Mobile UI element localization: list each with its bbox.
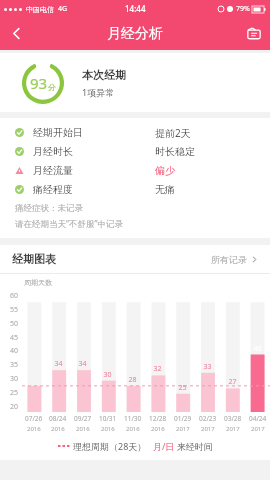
- staticText: 2016: [101, 425, 115, 433]
- staticText: 1项异常: [82, 86, 115, 98]
- staticText: 34: [54, 359, 63, 369]
- staticText: 32: [153, 364, 162, 374]
- staticText: 请在经期当天“不舒服”中记录: [15, 218, 124, 230]
- staticText: 25: [10, 388, 19, 398]
- staticText: 25: [178, 383, 187, 393]
- staticText: 09/27: [74, 414, 92, 423]
- staticText: 来经时间: [177, 441, 213, 452]
- staticText: 分: [48, 82, 56, 92]
- staticText: 30: [103, 370, 112, 380]
- staticText: 2017: [176, 425, 190, 433]
- staticText: 痛经程度: [33, 183, 73, 196]
- staticText: 14:44: [125, 3, 146, 14]
- staticText: 12/28: [149, 414, 167, 423]
- staticText: 月/日: [153, 440, 175, 452]
- staticText: 偏少: [155, 164, 175, 177]
- staticText: 理想周期（28天）: [73, 440, 147, 452]
- staticText: 2017: [201, 425, 215, 433]
- staticText: 93: [30, 73, 48, 93]
- staticText: 60: [10, 291, 19, 301]
- staticText: 2016: [151, 425, 165, 433]
- button[interactable]: 痛经程度: [0, 180, 270, 199]
- staticText: 50: [10, 319, 19, 329]
- staticText: 04/24: [249, 414, 267, 423]
- staticText: 45: [10, 333, 19, 343]
- staticText: 2016: [76, 425, 90, 433]
- staticText: 27: [228, 377, 237, 387]
- staticText: 03/28: [224, 414, 242, 423]
- staticText: 20: [10, 402, 19, 412]
- staticText: 4G: [58, 4, 68, 14]
- staticText: 中国电信: [26, 5, 54, 14]
- staticText: 时长稳定: [155, 145, 195, 158]
- staticText: 55: [10, 305, 19, 315]
- staticText: 月经分析: [107, 25, 163, 43]
- staticText: 07/26: [25, 414, 43, 423]
- staticText: 2016: [51, 425, 65, 433]
- staticText: 2016: [126, 425, 140, 433]
- button[interactable]: 经期开始日: [0, 123, 270, 142]
- staticText: 01/29: [174, 414, 192, 423]
- staticText: 02/23: [199, 414, 217, 423]
- staticText: 40: [10, 346, 19, 356]
- staticText: 40: [253, 344, 262, 354]
- staticText: 经期图表: [12, 252, 56, 266]
- staticText: 提前2天: [155, 126, 191, 140]
- staticText: 经期开始日: [33, 126, 83, 139]
- staticText: 34: [78, 359, 87, 369]
- button[interactable]: 月经时长: [0, 142, 270, 161]
- button[interactable]: 所有记录: [211, 254, 258, 265]
- staticText: 08/24: [49, 414, 67, 423]
- staticText: 痛经症状：未记录: [15, 203, 83, 214]
- staticText: 2017: [251, 425, 265, 433]
- staticText: 2017: [226, 425, 240, 433]
- staticText: 月经时长: [33, 145, 73, 158]
- button[interactable]: 月经流量: [0, 161, 270, 180]
- button[interactable]: Records: [237, 17, 270, 50]
- staticText: 33: [203, 362, 212, 372]
- staticText: 周期天数: [24, 278, 52, 287]
- staticText: 10/31: [99, 414, 117, 423]
- staticText: 11/30: [124, 414, 142, 423]
- staticText: 本次经期: [82, 68, 126, 82]
- staticText: 月经流量: [33, 164, 73, 177]
- staticText: 30: [10, 374, 19, 384]
- staticText: 所有记录: [211, 254, 247, 265]
- staticText: 35: [10, 360, 19, 370]
- button[interactable]: Back: [0, 17, 33, 50]
- staticText: 79%: [236, 4, 250, 14]
- staticText: 2016: [27, 425, 41, 433]
- staticText: 28: [128, 375, 137, 385]
- staticText: 无痛: [155, 183, 175, 196]
